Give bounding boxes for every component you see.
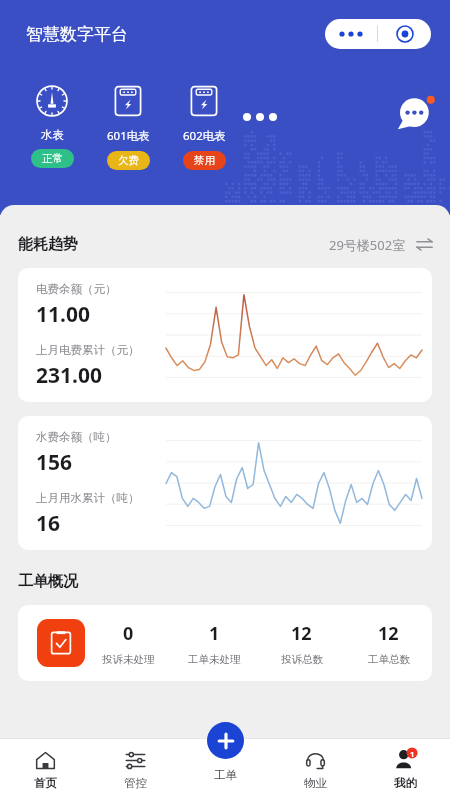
button[interactable]: 电费余额（元） <box>18 268 432 402</box>
staticText: 欠费 <box>118 154 139 167</box>
staticText: 工单未处理 <box>188 653 241 666</box>
button[interactable]: 12 <box>345 621 432 666</box>
button[interactable]: 601电表 <box>100 82 156 170</box>
staticText: 投诉未处理 <box>102 653 155 666</box>
staticText: 工单概况 <box>18 572 78 591</box>
button[interactable]: 首页 <box>0 738 90 800</box>
staticText: 0 <box>123 621 134 646</box>
staticText: 29号楼502室 <box>329 236 406 254</box>
button[interactable]: 管控 <box>90 738 180 800</box>
staticText: 12 <box>291 621 312 646</box>
staticText: 正常 <box>42 152 63 165</box>
staticText: 水费余额（吨） <box>36 430 117 444</box>
staticText: 电费余额（元） <box>36 282 117 296</box>
staticText: 首页 <box>34 776 57 790</box>
staticText: 231.00 <box>36 361 102 388</box>
staticText: 上月用水累计（吨） <box>36 491 140 505</box>
button[interactable]: 水费余额（吨） <box>18 416 432 550</box>
staticText: 能耗趋势 <box>18 235 78 254</box>
button[interactable]: 1 <box>171 621 258 666</box>
staticText: 601电表 <box>107 128 150 144</box>
button[interactable]: 29号楼502室 <box>329 235 434 254</box>
staticText: 1 <box>209 621 220 646</box>
button[interactable]: New work order <box>207 722 244 782</box>
staticText: 16 <box>36 509 61 536</box>
staticText: 602电表 <box>183 128 226 144</box>
staticText: 物业 <box>304 776 327 790</box>
button[interactable]: 水表 <box>24 82 80 168</box>
staticText: 禁用 <box>194 154 215 167</box>
staticText: 工单 <box>214 768 237 782</box>
staticText: 水表 <box>41 128 64 142</box>
button[interactable]: 0 <box>18 605 432 681</box>
button[interactable]: Messages <box>396 95 436 135</box>
staticText: 上月电费累计（元） <box>36 343 140 357</box>
button[interactable]: More and scan <box>325 19 431 49</box>
staticText: 11.00 <box>36 300 90 329</box>
staticText: 管控 <box>124 776 147 790</box>
staticText: 1 <box>410 749 415 759</box>
staticText: 工单总数 <box>368 653 410 666</box>
button[interactable]: 物业 <box>270 738 360 800</box>
staticText: 智慧数字平台 <box>26 24 128 45</box>
button[interactable]: 1 <box>360 738 450 800</box>
button[interactable]: 12 <box>258 621 345 666</box>
staticText: 投诉总数 <box>281 653 323 666</box>
staticText: 我的 <box>394 776 417 790</box>
button[interactable]: 0 <box>85 621 171 666</box>
staticText: 156 <box>36 448 73 477</box>
button[interactable]: 602电表 <box>176 82 232 170</box>
staticText: 12 <box>378 621 399 646</box>
